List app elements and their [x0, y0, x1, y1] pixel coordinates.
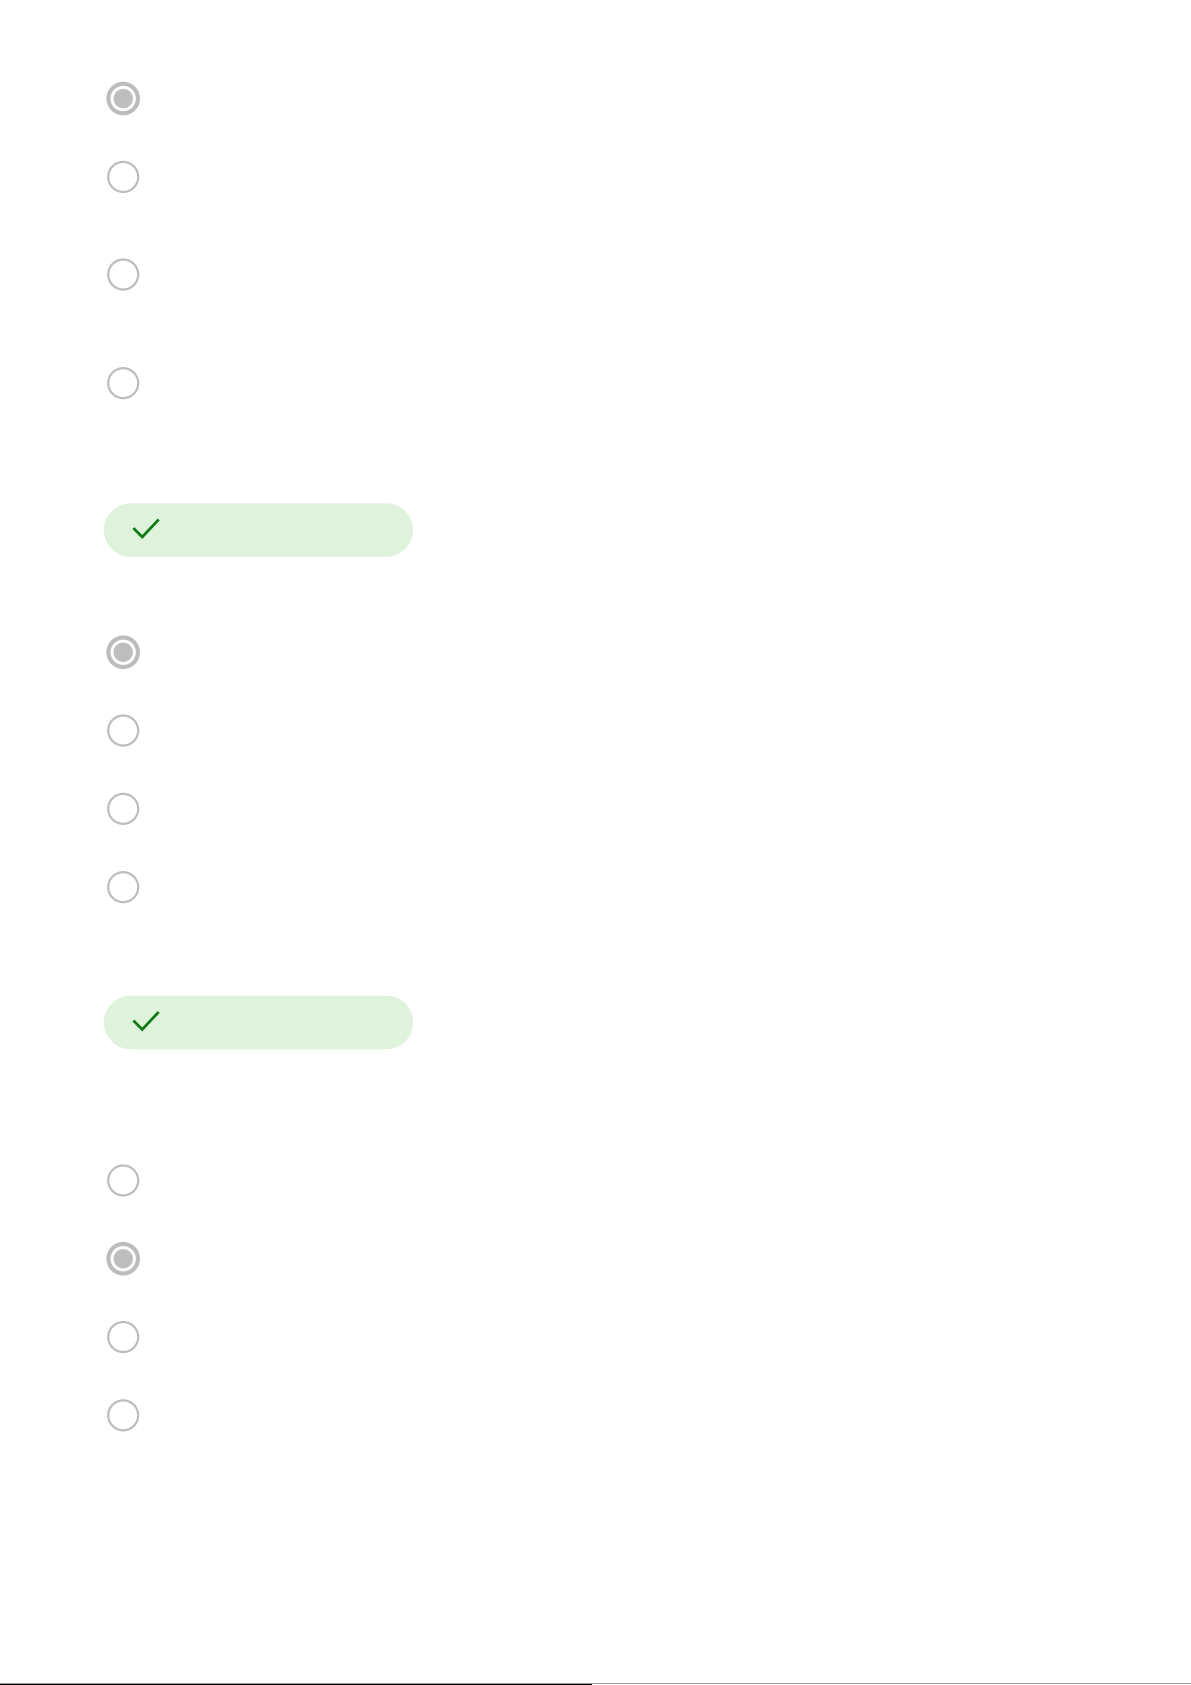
button[interactable]: Option A — [104, 1141, 1191, 1220]
button[interactable]: Option B — [104, 691, 1191, 770]
button[interactable]: Correct answer: Option A — [104, 503, 413, 557]
button[interactable]: Option D — [104, 1376, 1191, 1454]
button[interactable]: Option C — [104, 770, 1191, 848]
button[interactable]: Option B, selected — [104, 1220, 1191, 1298]
button[interactable]: Correct answer: Option A — [104, 996, 413, 1049]
button[interactable]: Option A, selected — [104, 59, 1191, 138]
button[interactable]: Option D — [104, 848, 1191, 926]
button[interactable]: Option A, selected — [104, 613, 1191, 691]
button[interactable]: Option C — [104, 1298, 1191, 1376]
